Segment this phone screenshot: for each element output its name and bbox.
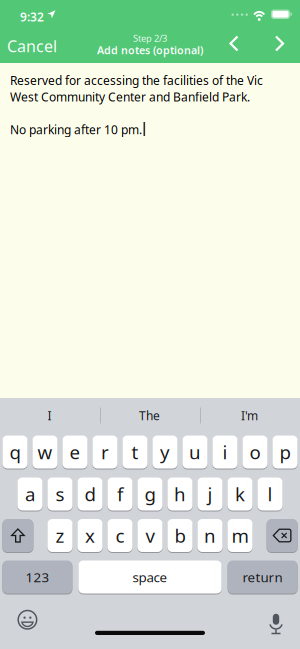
button[interactable]: g (137, 477, 163, 511)
button[interactable]: q (2, 435, 28, 469)
staticText: return (243, 568, 283, 586)
staticText: o (249, 440, 260, 464)
staticText: c (115, 523, 124, 548)
staticText: Add notes (optional) (97, 43, 203, 57)
staticText: g (144, 482, 155, 506)
staticText: j (207, 482, 212, 506)
button[interactable]: u (182, 435, 208, 469)
staticText: I (47, 407, 51, 423)
staticText: r (101, 440, 109, 464)
button[interactable] (220, 26, 247, 60)
button[interactable]: m (227, 518, 253, 552)
staticText: q (9, 440, 20, 464)
staticText: 123 (25, 568, 49, 586)
staticText: x (85, 523, 95, 548)
staticText: s (55, 482, 64, 506)
button[interactable]: return (228, 560, 298, 594)
button[interactable]: k (227, 477, 253, 511)
button[interactable]: x (77, 518, 103, 552)
button[interactable]: j (197, 477, 223, 511)
staticText: b (174, 523, 185, 548)
staticText: e (69, 440, 80, 464)
button[interactable] (2, 518, 33, 552)
button[interactable]: f (107, 477, 133, 511)
staticText: I'm (241, 407, 258, 423)
button[interactable] (10, 602, 45, 637)
button[interactable]: o (242, 435, 268, 469)
staticText: d (84, 482, 95, 506)
staticText: No parking after 10 pm. (10, 122, 142, 138)
button[interactable]: l (257, 477, 283, 511)
staticText: n (204, 523, 216, 548)
button[interactable] (266, 26, 293, 60)
button[interactable]: n (197, 518, 223, 552)
staticText: z (55, 523, 64, 548)
button[interactable]: 123 (2, 560, 72, 594)
button[interactable]: h (167, 477, 193, 511)
staticText: u (189, 440, 201, 464)
button[interactable] (257, 601, 291, 637)
button[interactable]: space (78, 560, 222, 594)
button[interactable]: t (122, 435, 148, 469)
staticText: 9:32 (20, 9, 44, 25)
button[interactable]: r (92, 435, 118, 469)
staticText: p (279, 440, 290, 464)
staticText: space (132, 568, 167, 586)
staticText: Cancel (7, 35, 57, 57)
staticText: m (231, 523, 248, 548)
button[interactable]: d (77, 477, 103, 511)
button[interactable]: b (167, 518, 193, 552)
staticText: Step 2/3 (133, 32, 167, 44)
button[interactable]: i (212, 435, 238, 469)
button[interactable]: y (152, 435, 178, 469)
button[interactable]: a (17, 477, 43, 511)
button[interactable]: Cancel (4, 34, 60, 58)
button[interactable]: s (47, 477, 73, 511)
button[interactable]: I (0, 398, 99, 433)
staticText: v (145, 523, 154, 548)
staticText: w (37, 440, 52, 464)
staticText: y (160, 440, 170, 464)
staticText: f (117, 482, 123, 506)
button[interactable]: w (32, 435, 58, 469)
staticText: h (174, 482, 186, 506)
staticText: i (222, 440, 227, 464)
staticText: West Community Center and Banfield Park. (10, 89, 250, 105)
staticText: The (139, 407, 160, 423)
staticText: l (267, 482, 272, 506)
staticText: k (235, 482, 245, 506)
button[interactable]: e (62, 435, 88, 469)
button[interactable]: I'm (200, 398, 299, 433)
staticText: t (131, 440, 138, 464)
button[interactable] (267, 518, 298, 552)
button[interactable]: p (272, 435, 298, 469)
button[interactable]: The (100, 398, 199, 433)
button[interactable]: v (137, 518, 163, 552)
staticText: a (25, 482, 35, 506)
button[interactable]: z (47, 518, 73, 552)
button[interactable]: c (107, 518, 133, 552)
staticText: Reserved for accessing the facilities of… (10, 72, 263, 88)
